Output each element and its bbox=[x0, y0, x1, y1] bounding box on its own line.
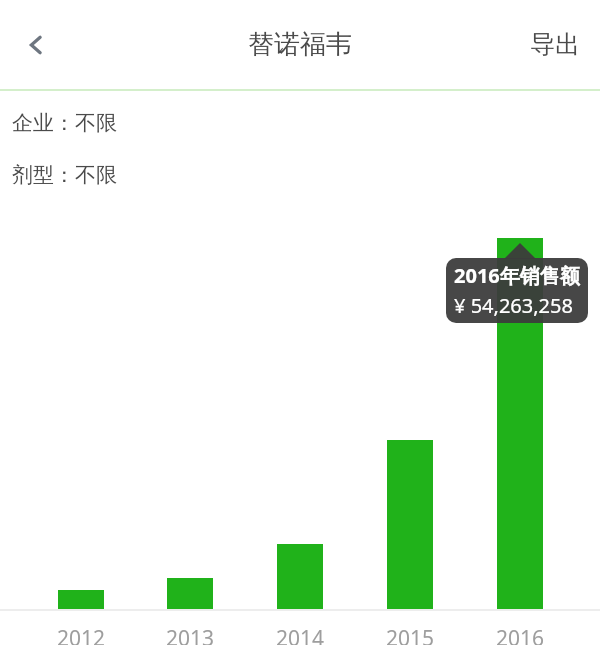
button[interactable]: Back bbox=[0, 9, 72, 81]
staticText: 剂型：不限 bbox=[12, 162, 117, 188]
staticText: 2016年销售额 bbox=[454, 262, 580, 289]
button[interactable]: 2016年销售额 bbox=[446, 258, 588, 323]
button[interactable]: 剂型：不限 bbox=[0, 160, 600, 190]
staticText: 2015 bbox=[370, 624, 450, 645]
button[interactable]: 企业：不限 bbox=[0, 108, 600, 138]
button[interactable]: 导出 bbox=[520, 17, 590, 72]
staticText: ¥ 54,263,258 bbox=[454, 292, 573, 319]
staticText: 2016 bbox=[480, 624, 560, 645]
staticText: 导出 bbox=[530, 29, 580, 60]
staticText: 2013 bbox=[150, 624, 230, 645]
staticText: 2012 bbox=[41, 624, 121, 645]
staticText: 替诺福韦 bbox=[248, 28, 352, 61]
staticText: 企业：不限 bbox=[12, 110, 117, 136]
button[interactable]: 2016 bar bbox=[497, 238, 543, 609]
staticText: 2014 bbox=[260, 624, 340, 645]
